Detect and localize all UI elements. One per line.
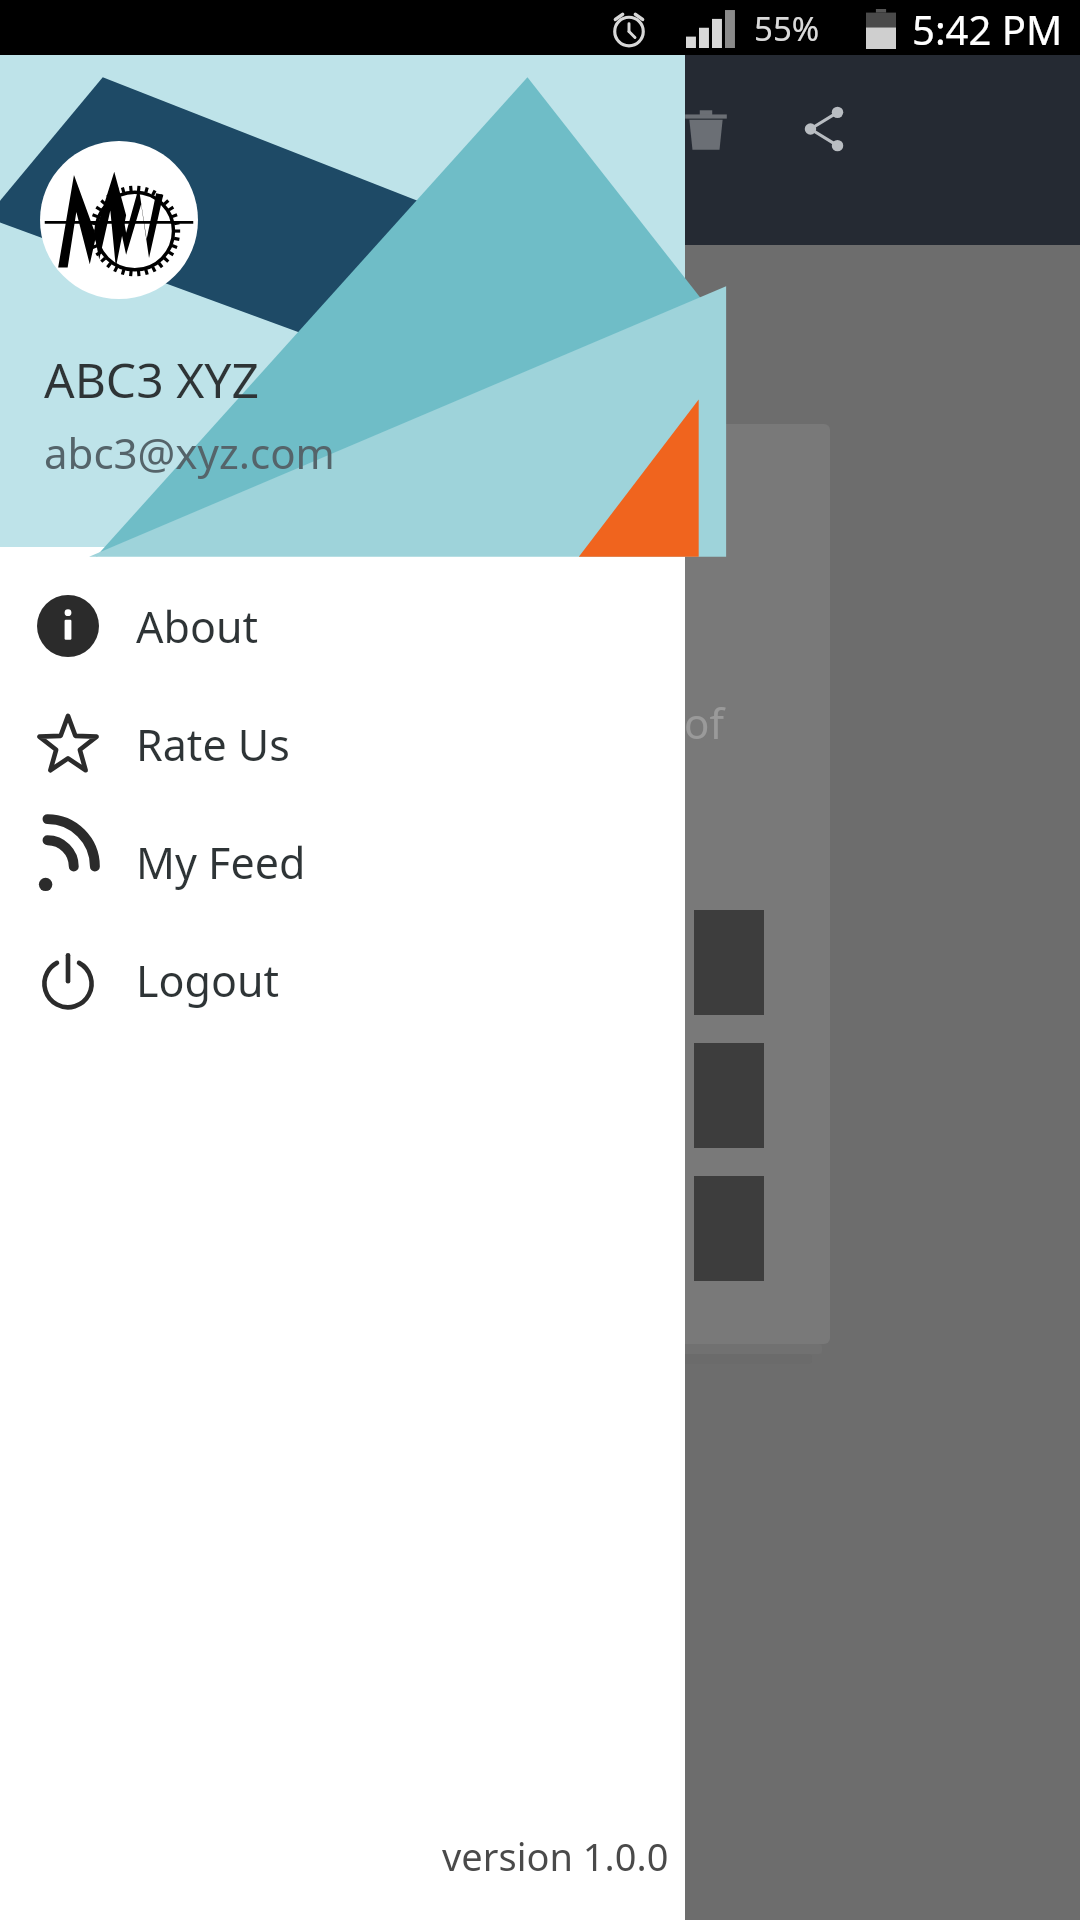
button[interactable]: Delete bbox=[672, 95, 740, 163]
button[interactable]: My Feed bbox=[0, 803, 685, 921]
button[interactable]: Logout bbox=[0, 921, 685, 1039]
staticText: My Feed bbox=[136, 833, 306, 892]
staticText: ABC3 XYZ bbox=[44, 347, 259, 412]
staticText: of bbox=[684, 694, 724, 751]
button[interactable]: About bbox=[0, 567, 685, 685]
staticText: About bbox=[136, 597, 259, 656]
button[interactable]: Rate Us bbox=[0, 685, 685, 803]
staticText: Rate Us bbox=[136, 715, 290, 774]
staticText: abc3@xyz.com bbox=[44, 424, 335, 481]
staticText: 55% bbox=[754, 6, 820, 51]
staticText: Logout bbox=[136, 951, 280, 1010]
staticText: version 1.0.0 bbox=[442, 1830, 669, 1882]
staticText: 5:42 PM bbox=[912, 2, 1063, 56]
button[interactable]: Share bbox=[790, 95, 858, 163]
